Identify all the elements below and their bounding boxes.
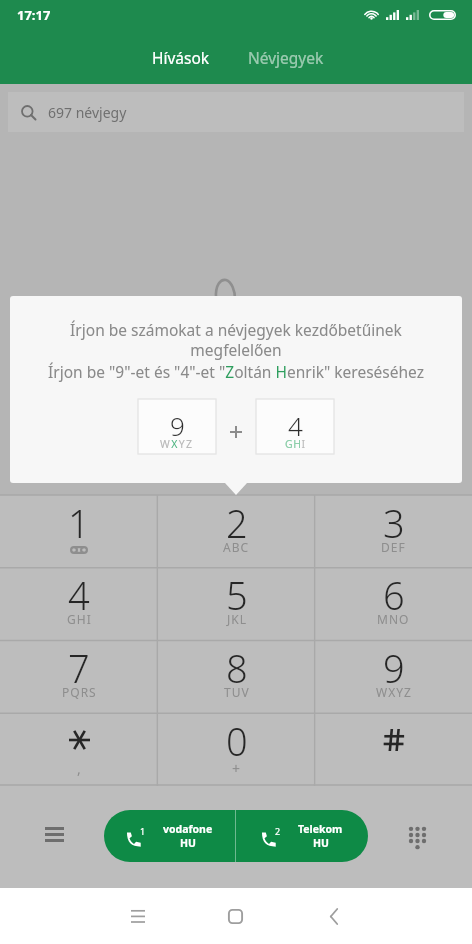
staticText: MNO (377, 611, 410, 627)
button[interactable]: 1 (104, 810, 235, 862)
staticText: 4 (68, 569, 90, 621)
button[interactable]: Menu (34, 814, 74, 854)
staticText: 1 (140, 825, 146, 837)
button[interactable]: 5 (158, 567, 315, 640)
button[interactable]: Dialpad (397, 818, 437, 858)
staticText: JKL (227, 611, 247, 627)
staticText: 2 (275, 825, 281, 837)
staticText: 0 (226, 715, 248, 767)
staticText: 3 (383, 497, 405, 549)
button[interactable]: 1 (0, 495, 158, 567)
button[interactable]: 2 (236, 810, 368, 862)
button[interactable]: 7 (0, 640, 158, 713)
staticText: 9 (383, 642, 405, 694)
staticText: HU (313, 836, 329, 850)
staticText: 7 (68, 642, 90, 694)
staticText: 4 (288, 408, 303, 443)
button[interactable]: 4 (0, 567, 158, 640)
staticText: vodafone (163, 822, 213, 836)
button[interactable]: 9 (315, 640, 472, 713)
staticText: WXYZ (160, 437, 194, 451)
staticText: Telekom (298, 822, 343, 836)
staticText: 1 (68, 497, 90, 549)
staticText: Írjon be "9"-et és "4"-et "Zoltán Henrik… (48, 361, 424, 382)
button[interactable]: Hívások (128, 34, 233, 80)
staticText: 2 (226, 497, 248, 549)
button[interactable]: Névjegyek (233, 34, 338, 80)
button[interactable] (315, 713, 472, 786)
button[interactable]: Recents (114, 892, 162, 940)
staticText: TUV (224, 684, 250, 700)
button[interactable]: 2 (158, 495, 315, 567)
button[interactable]: , (0, 713, 158, 786)
staticText: Írjon be számokat a névjegyek kezdőbetűi… (38, 319, 434, 360)
staticText: GHI (67, 611, 92, 627)
button[interactable]: Home (211, 892, 259, 940)
staticText: DEF (381, 539, 406, 555)
staticText: + (232, 759, 241, 778)
staticText: 17:17 (17, 6, 51, 24)
staticText: WXYZ (376, 684, 412, 700)
staticText: ABC (223, 539, 250, 555)
button[interactable]: 697 névjegy (8, 92, 464, 132)
button[interactable]: 8 (158, 640, 315, 713)
button[interactable]: 6 (315, 567, 472, 640)
staticText: 8 (226, 642, 248, 694)
staticText: 5 (226, 569, 248, 621)
staticText: GHI (285, 437, 306, 451)
staticText: 9 (170, 408, 185, 443)
staticText: 6 (383, 569, 405, 621)
staticText: HU (180, 836, 196, 850)
staticText: 697 névjegy (48, 103, 127, 122)
staticText: Névjegyek (248, 47, 324, 68)
button[interactable]: 3 (315, 495, 472, 567)
button[interactable]: 0 (158, 713, 315, 786)
staticText: , (77, 759, 81, 778)
staticText: Hívások (152, 47, 210, 68)
button[interactable]: Back (310, 892, 358, 940)
staticText: PQRS (62, 684, 97, 700)
